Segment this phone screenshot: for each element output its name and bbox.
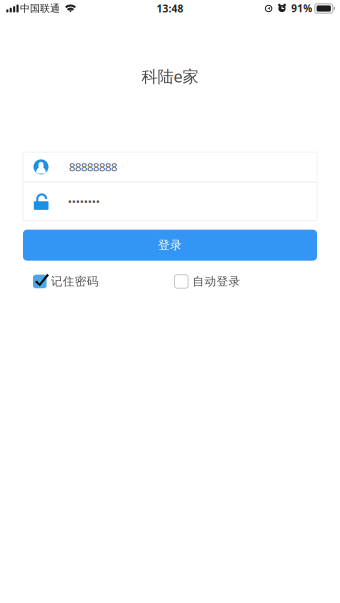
staticText: 科陆e家 xyxy=(141,65,198,87)
staticText: 自动登录 xyxy=(192,274,240,289)
staticText: 88888888 xyxy=(69,159,117,174)
staticText: 91% xyxy=(291,2,312,15)
button[interactable]: 88888888 xyxy=(23,152,317,182)
button[interactable]: •••••••• xyxy=(23,183,317,221)
button[interactable]: 自动登录 xyxy=(174,274,240,289)
button[interactable]: 登录 xyxy=(23,230,317,261)
staticText: 中国联通 xyxy=(20,2,60,15)
staticText: •••••••• xyxy=(68,194,100,209)
staticText: 登录 xyxy=(158,238,182,253)
staticText: 记住密码 xyxy=(51,274,99,289)
staticText: 13:48 xyxy=(156,2,183,15)
button[interactable]: 记住密码 xyxy=(33,274,99,289)
